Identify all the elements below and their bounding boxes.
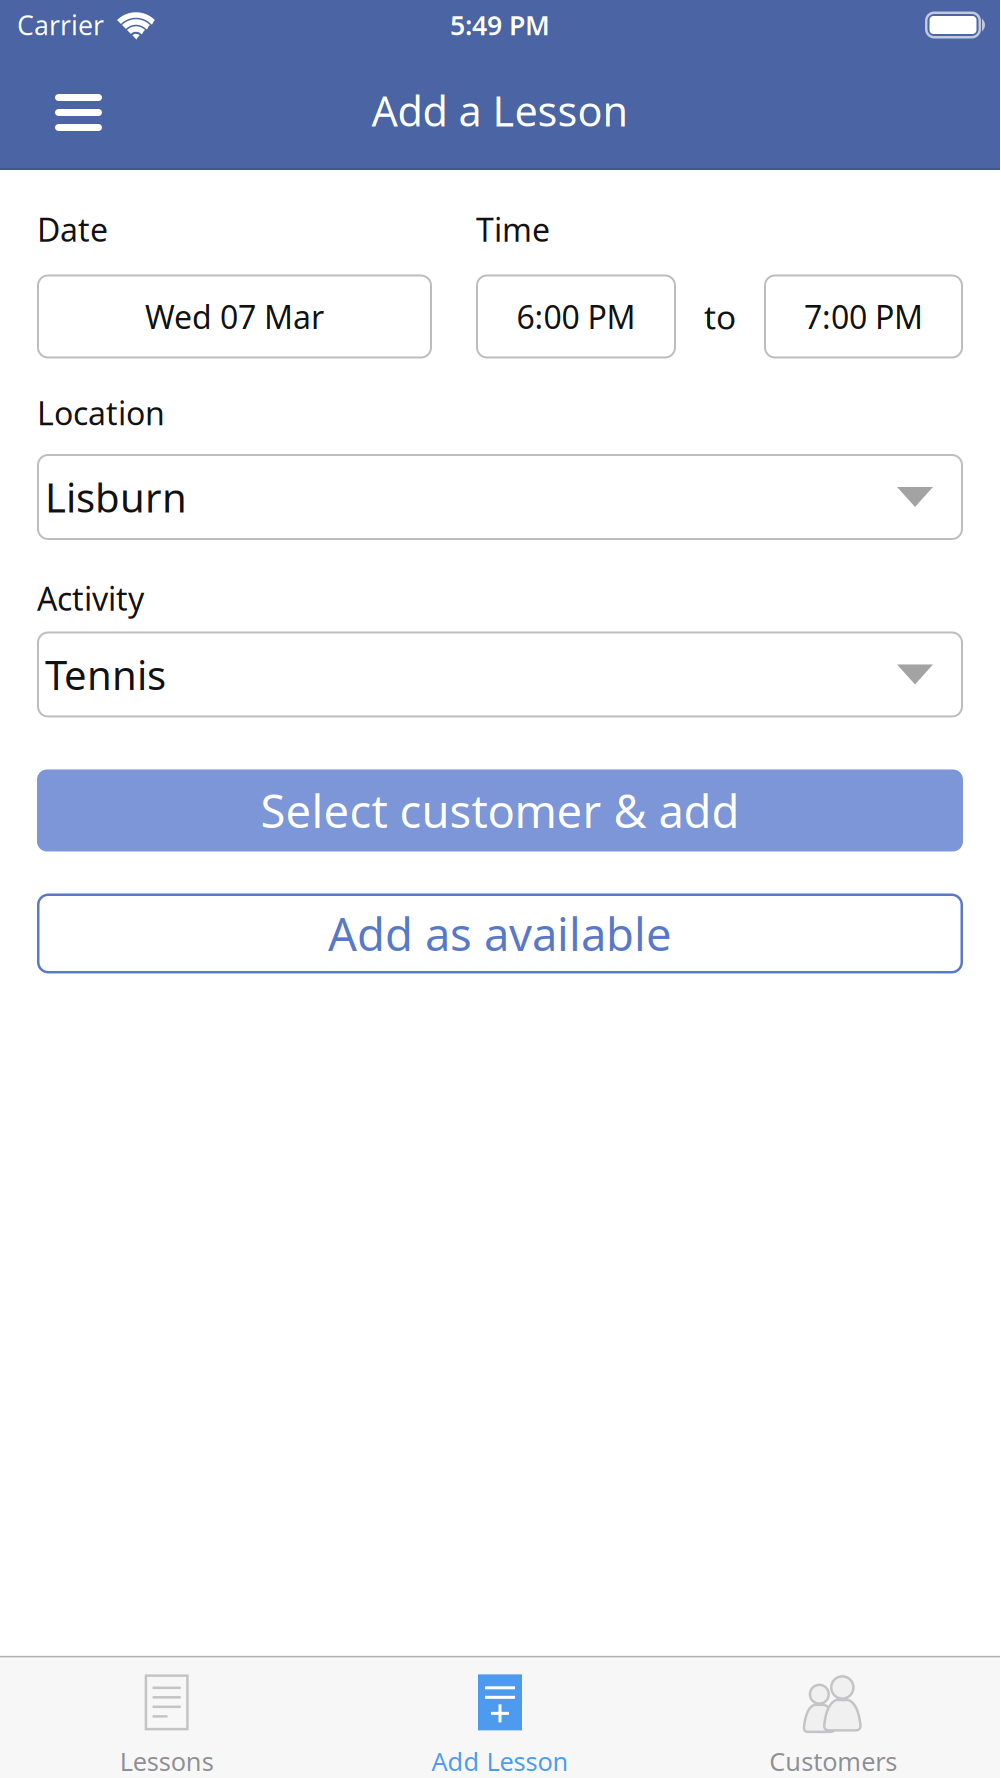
staticText: Time bbox=[476, 208, 550, 250]
button[interactable]: Wed 07 Mar bbox=[37, 274, 432, 358]
staticText: to bbox=[704, 294, 736, 339]
button[interactable]: Add as available bbox=[37, 893, 963, 973]
staticText: Tennis bbox=[45, 648, 166, 701]
button[interactable]: Menu bbox=[0, 90, 102, 131]
staticText: Activity bbox=[37, 577, 144, 619]
staticText: Lessons bbox=[120, 1744, 214, 1778]
staticText: Date bbox=[37, 208, 108, 250]
staticText: Wed 07 Mar bbox=[145, 295, 324, 338]
staticText: Customers bbox=[769, 1744, 897, 1778]
button[interactable]: Lisburn bbox=[37, 454, 963, 540]
button[interactable]: 7:00 PM bbox=[764, 274, 963, 358]
button[interactable]: Tennis bbox=[37, 631, 963, 717]
staticText: Add as available bbox=[328, 903, 672, 964]
staticText: Location bbox=[37, 391, 165, 434]
staticText: Add Lesson bbox=[431, 1744, 568, 1778]
staticText: Add a Lesson bbox=[371, 83, 628, 138]
button[interactable]: Lessons bbox=[0, 1674, 333, 1778]
staticText: Lisburn bbox=[45, 470, 187, 523]
staticText: Select customer & add bbox=[260, 780, 739, 841]
button[interactable]: Add Lesson bbox=[333, 1674, 667, 1778]
button[interactable]: Select customer & add bbox=[37, 769, 963, 851]
staticText: Carrier bbox=[17, 7, 104, 43]
button[interactable]: 6:00 PM bbox=[476, 274, 676, 358]
staticText: 6:00 PM bbox=[516, 295, 635, 338]
staticText: 7:00 PM bbox=[804, 295, 923, 338]
button[interactable]: Customers bbox=[667, 1674, 1000, 1778]
staticText: 5:49 PM bbox=[450, 7, 550, 43]
